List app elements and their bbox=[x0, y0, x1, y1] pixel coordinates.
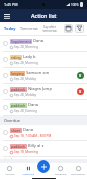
button[interactable]: paddock bbox=[0, 141, 87, 157]
button[interactable]: paddock bbox=[0, 157, 87, 159]
staticText: Billy al z bbox=[28, 143, 44, 149]
button[interactable]: paddock bbox=[0, 84, 87, 100]
staticText: Day after tomorrow bbox=[42, 25, 57, 33]
staticText: 1:45 PM bbox=[4, 2, 18, 7]
button[interactable]: Availability bbox=[51, 166, 69, 175]
staticText: Sep 28, Morning bbox=[14, 61, 38, 65]
staticText: 100% bbox=[71, 3, 79, 7]
button[interactable]: Menu bbox=[2, 11, 12, 21]
staticText: Overdue bbox=[4, 118, 20, 123]
staticText: Supplement bbox=[11, 39, 31, 44]
staticText: U bbox=[79, 90, 82, 94]
staticText: Dana bbox=[28, 102, 39, 108]
staticText: Courses bbox=[5, 172, 15, 175]
staticText: U bbox=[79, 74, 82, 78]
staticText: paddock bbox=[11, 103, 26, 108]
button[interactable]: Tomorrow bbox=[19, 24, 39, 33]
staticText: paddock bbox=[11, 87, 26, 92]
button[interactable]: Filter bbox=[75, 24, 84, 33]
staticText: Reservation bbox=[71, 172, 85, 175]
staticText: Action list bbox=[22, 172, 34, 175]
staticText: Lady b bbox=[23, 54, 36, 60]
button[interactable]: Add bbox=[37, 160, 50, 173]
staticText: Sep 28, Morning bbox=[14, 45, 38, 49]
button[interactable]: riding bbox=[0, 52, 87, 68]
button[interactable]: lunging bbox=[0, 68, 87, 84]
staticText: lunging bbox=[11, 71, 24, 76]
staticText: Sep 28, Midday bbox=[14, 77, 37, 81]
button[interactable]: paddock bbox=[0, 100, 87, 116]
staticText: shoer bbox=[11, 128, 21, 133]
staticText: paddock bbox=[11, 144, 26, 149]
button[interactable]: Supplement bbox=[0, 36, 87, 52]
staticText: riding bbox=[11, 55, 21, 60]
staticText: Niagra Jump bbox=[28, 86, 52, 92]
button[interactable]: shoer bbox=[0, 125, 87, 141]
button[interactable]: Today bbox=[3, 24, 17, 33]
staticText: Today bbox=[4, 26, 16, 31]
button[interactable]: Action list bbox=[19, 166, 37, 175]
button[interactable]: Courses bbox=[0, 166, 19, 175]
button[interactable]: Calendar bbox=[64, 24, 73, 33]
button[interactable]: Day after tomorrow bbox=[41, 25, 58, 33]
staticText: Sep 28, Midday bbox=[14, 93, 37, 97]
staticText: Availability bbox=[54, 172, 67, 175]
button[interactable]: Reservation bbox=[69, 166, 87, 175]
staticText: Sep 18, 7:00 AM - 8:00 PM bbox=[14, 134, 52, 138]
staticText: Sep 28, Evening bbox=[14, 109, 37, 113]
staticText: Tomorrow bbox=[20, 26, 38, 31]
staticText: Sep 18, Morning bbox=[14, 150, 38, 154]
staticText: Samson son bbox=[26, 70, 50, 76]
staticText: Dana bbox=[23, 127, 34, 133]
staticText: Dana bbox=[33, 38, 44, 44]
staticText: Action list bbox=[31, 12, 57, 19]
